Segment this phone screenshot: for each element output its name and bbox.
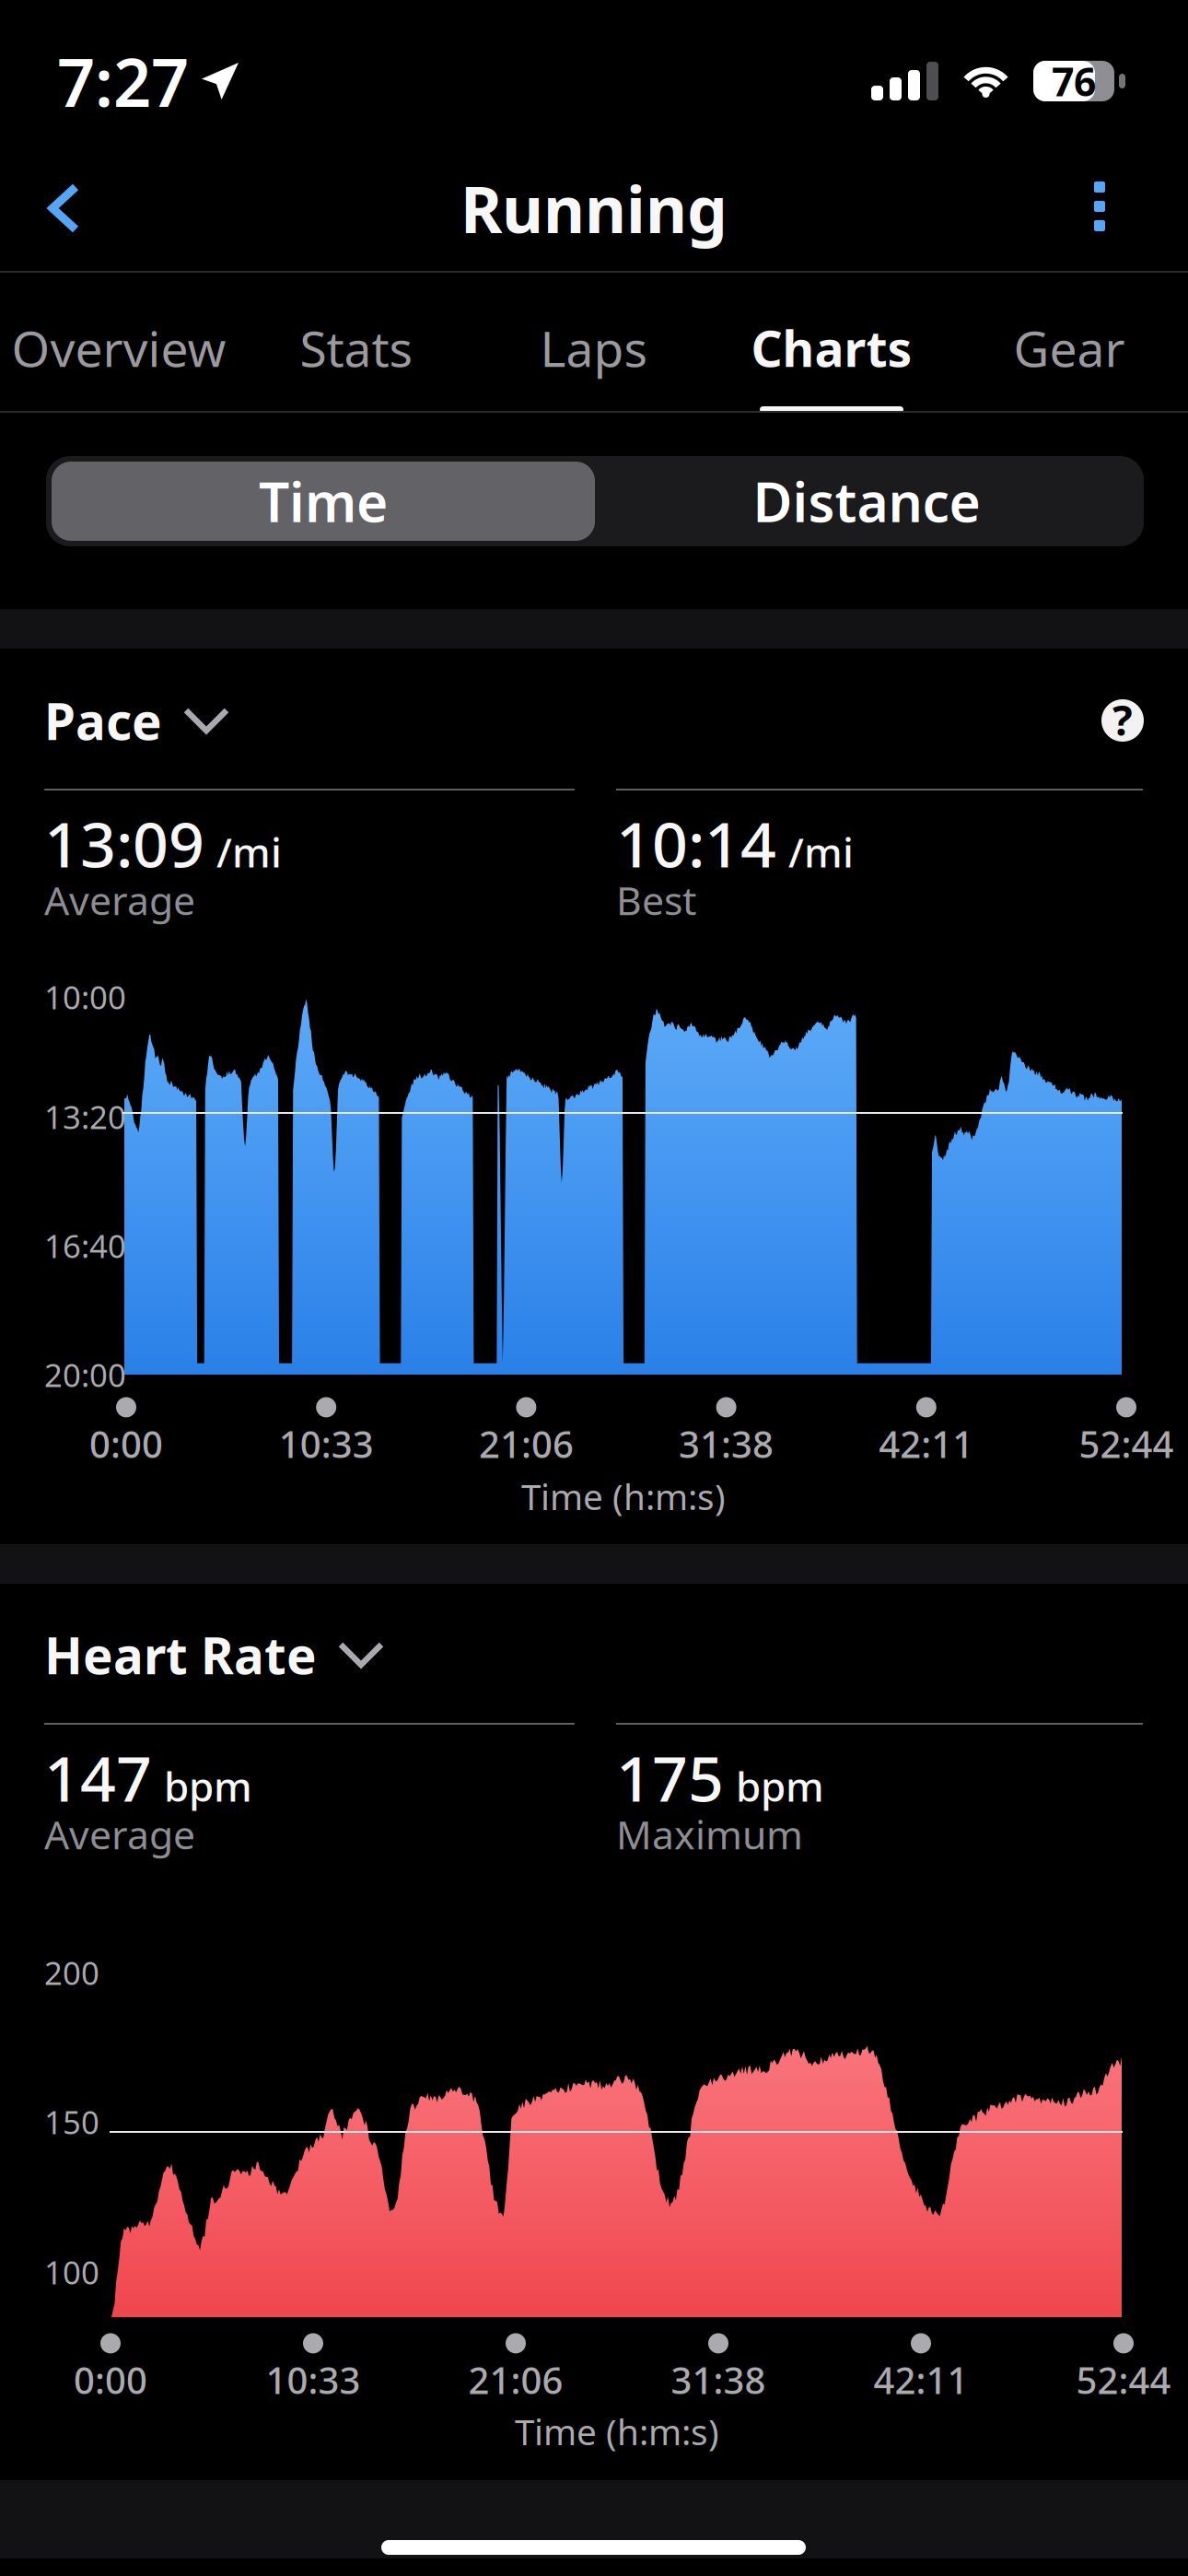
staticText: 100: [44, 2251, 99, 2293]
staticText: 21:06: [479, 1419, 574, 1468]
staticText: 10:00: [44, 976, 126, 1018]
staticText: 0:00: [74, 2355, 147, 2404]
staticText: 13:20: [44, 1095, 126, 1138]
staticText: Maximum: [616, 1808, 803, 1860]
button[interactable]: Stats: [238, 273, 475, 413]
button[interactable]: Time: [52, 462, 595, 541]
button[interactable]: Distance: [595, 462, 1138, 541]
staticText: 52:44: [1079, 1419, 1174, 1468]
staticText: 7:27: [57, 37, 189, 125]
staticText: 31:38: [679, 1419, 774, 1468]
staticText: Heart Rate: [44, 1621, 317, 1688]
staticText: /mi: [788, 825, 854, 879]
button[interactable]: More options: [1048, 148, 1153, 264]
staticText: bpm: [736, 1759, 824, 1813]
button[interactable]: Laps: [475, 273, 713, 413]
staticText: Charts: [751, 315, 912, 381]
staticText: 200: [44, 1951, 99, 1994]
staticText: 42:11: [879, 1419, 974, 1468]
staticText: Average: [44, 1808, 195, 1860]
staticText: 16:40: [44, 1224, 126, 1267]
staticText: Running: [460, 166, 728, 251]
staticText: Average: [44, 874, 195, 926]
staticText: Time: [259, 465, 388, 537]
staticText: 13:09: [44, 802, 204, 885]
button[interactable]: Heart Rate: [44, 1622, 381, 1688]
staticText: 52:44: [1076, 2355, 1171, 2404]
staticText: Laps: [540, 315, 648, 381]
staticText: 31:38: [671, 2355, 766, 2404]
staticText: Overview: [12, 315, 226, 381]
button[interactable]: Gear: [950, 273, 1188, 413]
staticText: Distance: [753, 465, 980, 537]
staticText: Stats: [300, 315, 413, 381]
staticText: 10:33: [266, 2355, 361, 2404]
staticText: ?: [1112, 692, 1133, 747]
staticText: Time (h:m:s): [521, 1473, 726, 1520]
staticText: Time (h:m:s): [515, 2408, 719, 2455]
staticText: 150: [44, 2101, 99, 2143]
staticText: 10:14: [616, 802, 776, 885]
staticText: 42:11: [874, 2355, 968, 2404]
staticText: Best: [616, 874, 696, 926]
staticText: /mi: [216, 825, 282, 879]
button[interactable]: Back: [0, 150, 129, 266]
staticText: 0:00: [89, 1419, 163, 1468]
staticText: 10:33: [279, 1419, 374, 1468]
staticText: bpm: [164, 1759, 252, 1813]
button[interactable]: Pace: [44, 687, 227, 754]
button[interactable]: Overview: [0, 273, 238, 413]
staticText: 76: [1052, 55, 1096, 107]
button[interactable]: Charts: [713, 273, 950, 413]
staticText: 147: [44, 1736, 152, 1819]
staticText: Gear: [1013, 315, 1125, 381]
staticText: Pace: [44, 687, 162, 754]
button[interactable]: Help: [1090, 688, 1155, 753]
staticText: 20:00: [44, 1353, 126, 1396]
staticText: 21:06: [468, 2355, 563, 2404]
staticText: 175: [616, 1736, 724, 1819]
